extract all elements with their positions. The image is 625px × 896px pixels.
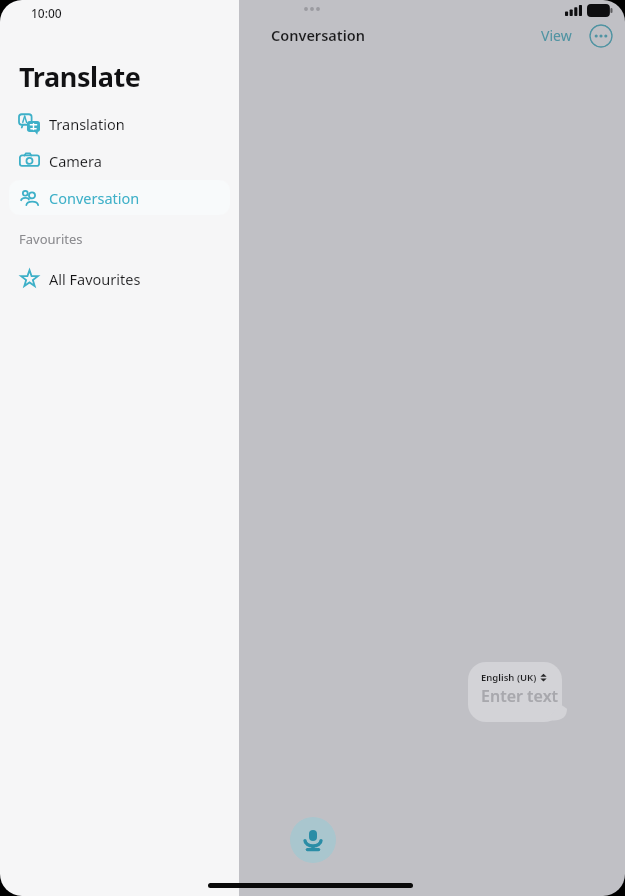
staticText: View (541, 26, 572, 45)
staticText: Translate (19, 58, 141, 95)
button[interactable]: Translation (9, 106, 230, 141)
staticText: Translation (49, 114, 125, 134)
button[interactable]: View (537, 23, 576, 48)
staticText: English (UK) (481, 671, 537, 684)
staticText: Favourites (19, 230, 83, 248)
button[interactable]: English (UK) (468, 662, 568, 722)
button[interactable]: Conversation (9, 180, 230, 215)
button[interactable]: All Favourites (9, 261, 230, 296)
staticText: Camera (49, 151, 102, 171)
button[interactable]: More options (589, 24, 613, 48)
staticText: Conversation (271, 25, 365, 45)
staticText: 10:00 (31, 5, 62, 21)
button[interactable]: Camera (9, 143, 230, 178)
button[interactable]: Start recording (290, 817, 336, 863)
staticText: Conversation (49, 188, 140, 208)
staticText: All Favourites (49, 269, 141, 289)
staticText: Enter text (481, 685, 559, 707)
